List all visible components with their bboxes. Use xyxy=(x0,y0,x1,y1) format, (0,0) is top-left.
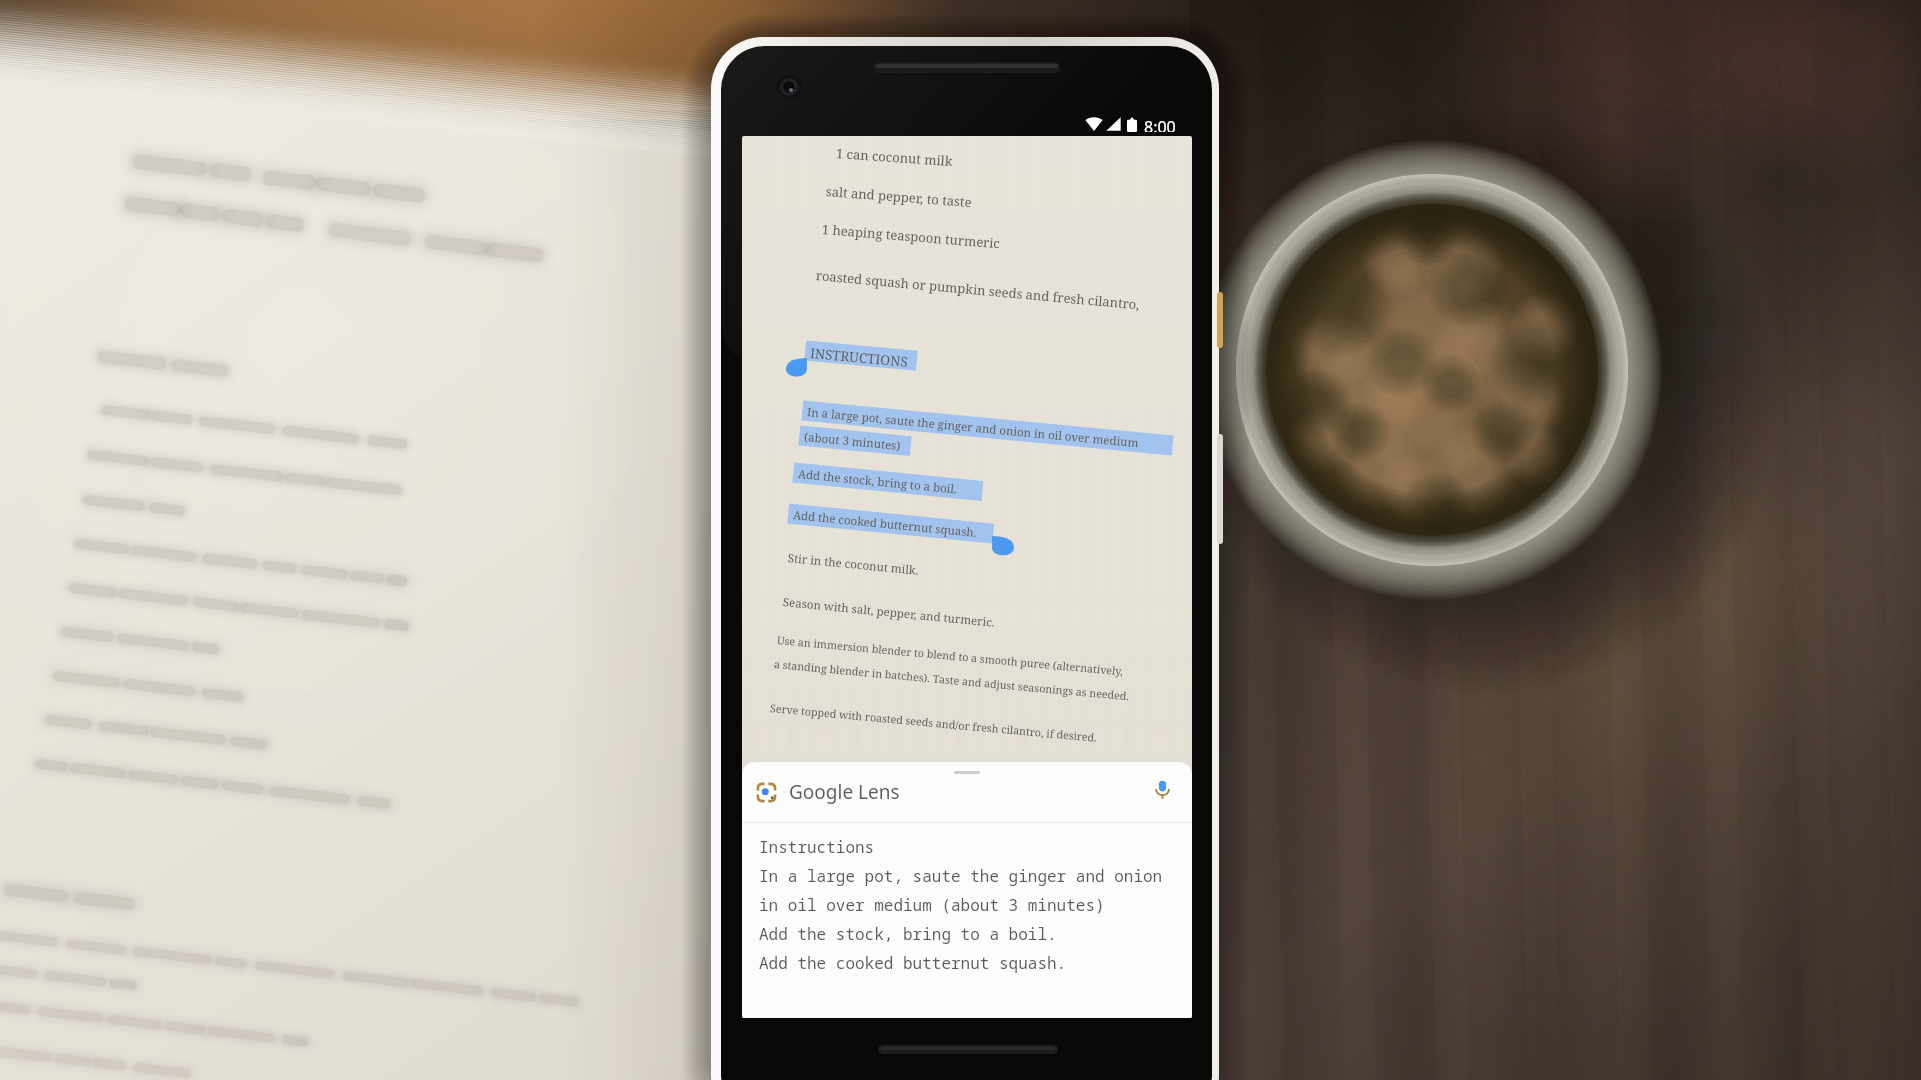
staticText: In a large pot, saute the ginger and oni… xyxy=(806,404,1139,451)
staticText: Add the stock, bring to a boil. xyxy=(759,923,1057,945)
staticText: Stir in the coconut milk. xyxy=(787,550,920,579)
button[interactable]: Instructions xyxy=(742,825,1192,985)
staticText: 1 can coconut milk xyxy=(835,144,953,170)
staticText: salt and pepper, to taste xyxy=(825,182,972,211)
staticText: 1 heaping teaspoon turmeric xyxy=(821,220,1001,252)
staticText: in oil over medium (about 3 minutes) xyxy=(759,894,1105,916)
staticText: 8:00 xyxy=(1144,116,1176,132)
staticText: Instructions xyxy=(759,836,875,858)
staticText: INSTRUCTIONS xyxy=(809,344,909,371)
staticText: Add the cooked butternut squash. xyxy=(792,507,978,541)
button[interactable]: Voice search xyxy=(1142,769,1182,809)
button[interactable]: Selection start handle xyxy=(786,358,807,379)
button[interactable]: Selection end handle xyxy=(992,536,1014,558)
staticText: Google Lens xyxy=(789,779,900,805)
staticText: Add the stock, bring to a boil. xyxy=(797,466,958,497)
staticText: roasted squash or pumpkin seeds and fres… xyxy=(815,266,1140,313)
button[interactable]: Google Lens xyxy=(742,773,1192,811)
staticText: a standing blender in batches). Taste an… xyxy=(773,657,1130,704)
staticText: Season with salt, pepper, and turmeric. xyxy=(782,594,996,631)
staticText: (about 3 minutes) xyxy=(803,429,901,454)
staticText: Serve topped with roasted seeds and/or f… xyxy=(769,701,1098,746)
staticText: In a large pot, saute the ginger and oni… xyxy=(759,865,1163,887)
button[interactable]: Expand sheet xyxy=(939,763,995,781)
staticText: Add the cooked butternut squash. xyxy=(759,952,1067,974)
staticText: Use an immersion blender to blend to a s… xyxy=(776,633,1124,679)
